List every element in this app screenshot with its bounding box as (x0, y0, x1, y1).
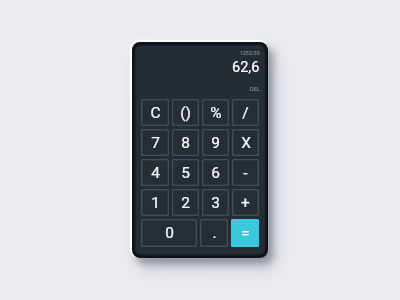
button[interactable]: X (232, 129, 259, 156)
button[interactable]: = (231, 219, 259, 247)
staticText: / (242, 104, 249, 122)
button[interactable]: 3 (202, 189, 229, 216)
staticText: 2 (181, 194, 190, 212)
staticText: 5 (181, 164, 190, 182)
staticText: - (243, 164, 248, 182)
staticText: 1 (151, 194, 160, 212)
button[interactable]: 9 (202, 129, 229, 156)
staticText: C (150, 104, 161, 122)
button[interactable]: % (202, 99, 229, 126)
button[interactable]: 4 (141, 159, 169, 186)
button[interactable]: + (232, 189, 259, 216)
staticText: 62,6 (232, 59, 260, 76)
staticText: = (241, 224, 250, 242)
button[interactable]: 2 (172, 189, 199, 216)
staticText: 4 (151, 164, 160, 182)
staticText: 9 (211, 134, 220, 152)
staticText: () (180, 104, 191, 122)
button[interactable]: 6 (202, 159, 229, 186)
button[interactable]: / (232, 99, 259, 126)
button[interactable]: 1 (141, 189, 169, 216)
button[interactable]: DEL (250, 86, 260, 93)
staticText: . (212, 224, 217, 242)
button[interactable]: C (141, 99, 169, 126)
staticText: X (241, 134, 251, 152)
button[interactable]: . (200, 219, 228, 247)
staticText: DEL (250, 86, 260, 93)
staticText: 6 (211, 164, 220, 182)
staticText: 0 (165, 224, 174, 242)
button[interactable]: 0 (141, 219, 197, 247)
staticText: 8 (181, 134, 190, 152)
staticText: % (210, 104, 222, 122)
button[interactable]: - (232, 159, 259, 186)
button[interactable]: 5 (172, 159, 199, 186)
staticText: + (241, 194, 250, 212)
staticText: 7 (151, 134, 160, 152)
staticText: 1252/20 (240, 50, 260, 56)
staticText: 3 (211, 194, 220, 212)
button[interactable]: 8 (172, 129, 199, 156)
button[interactable]: 7 (141, 129, 169, 156)
button[interactable]: () (172, 99, 199, 126)
